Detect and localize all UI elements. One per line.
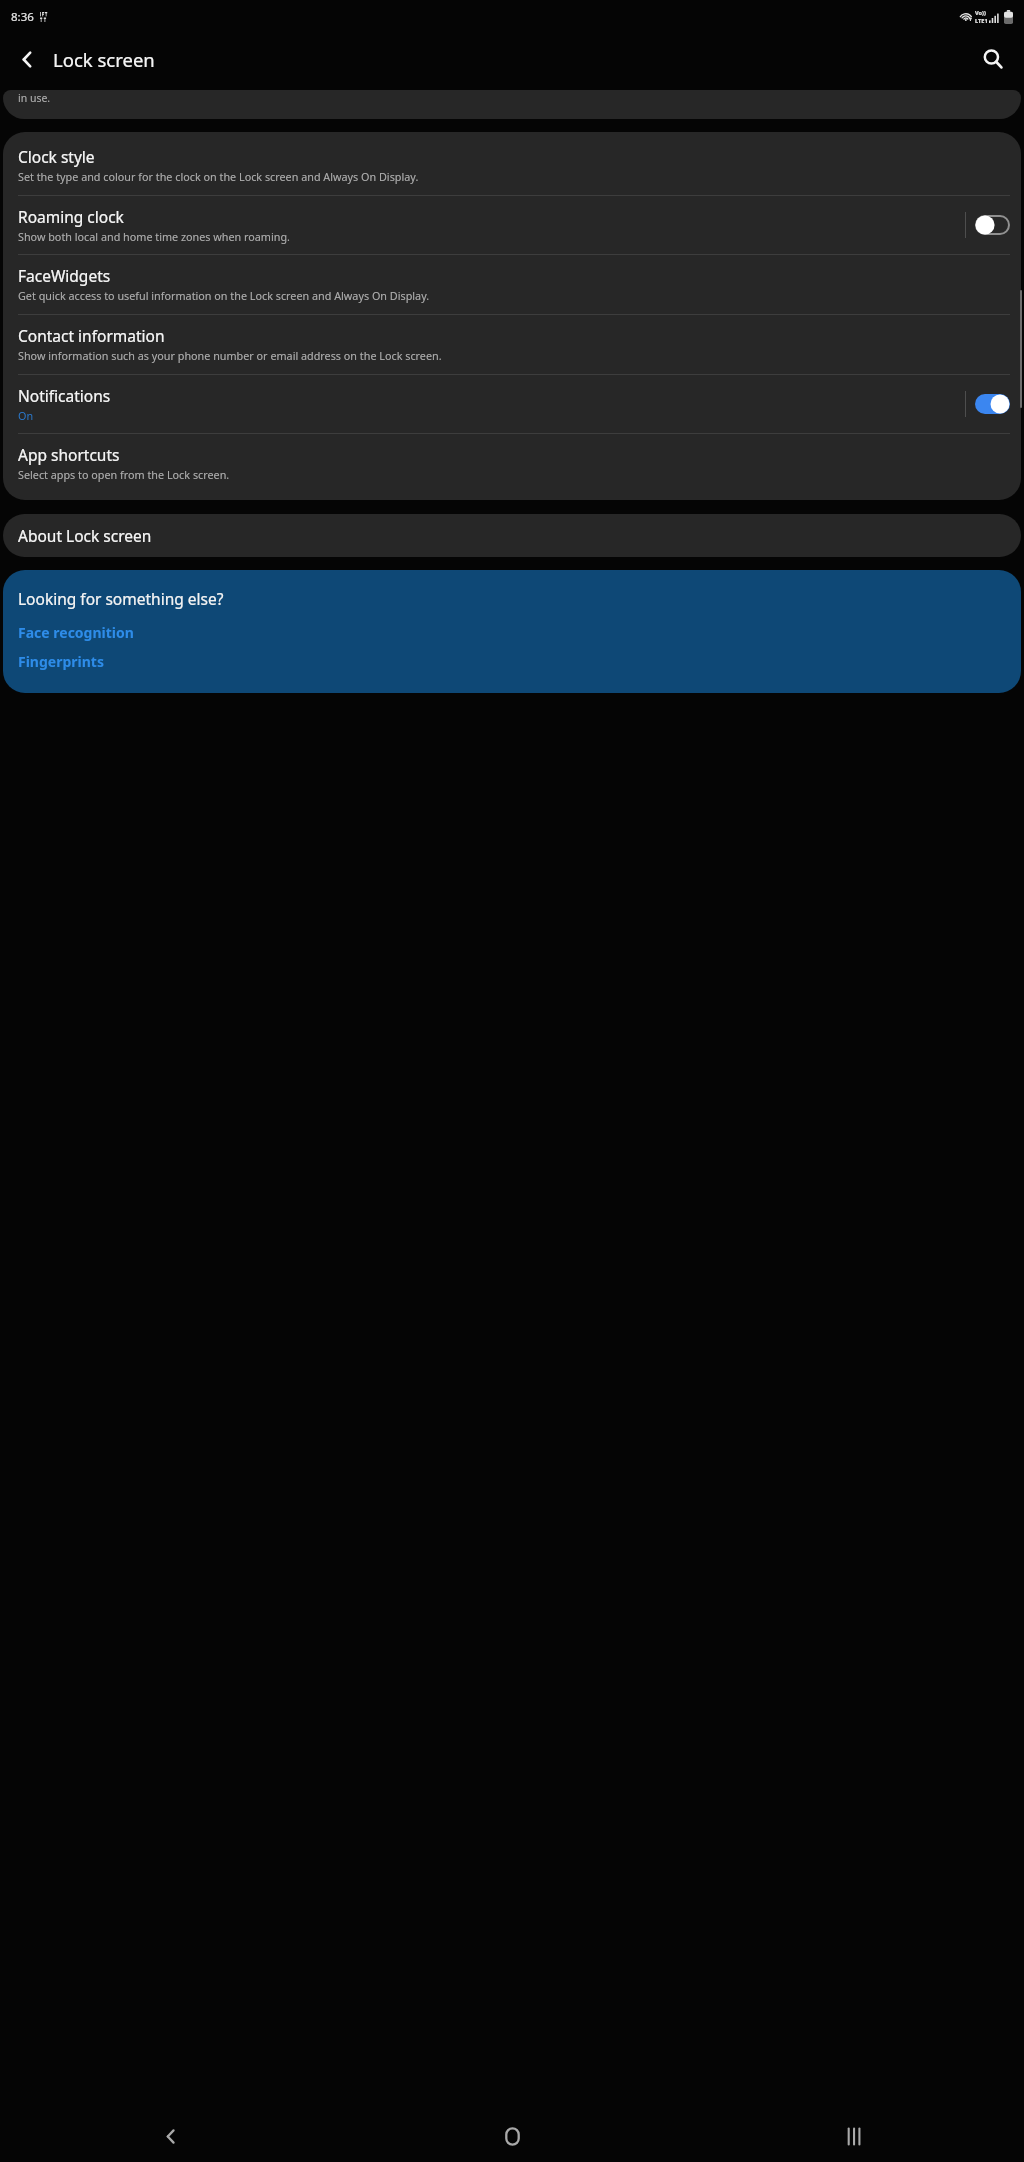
staticText: 8:36 bbox=[11, 9, 34, 25]
button[interactable]: Home bbox=[342, 2110, 683, 2162]
staticText: Face recognition bbox=[18, 623, 134, 642]
staticText: Select apps to open from the Lock screen… bbox=[18, 467, 230, 482]
staticText: Show both local and home time zones when… bbox=[18, 229, 290, 244]
staticText: Fingerprints bbox=[18, 652, 104, 671]
staticText: Show information such as your phone numb… bbox=[18, 348, 442, 363]
staticText: Roaming clock bbox=[18, 206, 124, 227]
button[interactable]: Back bbox=[0, 2110, 342, 2162]
button[interactable]: Contact information bbox=[3, 315, 1021, 374]
button[interactable]: Switch on bbox=[975, 394, 1010, 414]
staticText: Set the type and colour for the clock on… bbox=[18, 169, 419, 184]
staticText: Contact information bbox=[18, 325, 165, 346]
staticText: Get quick access to useful information o… bbox=[18, 288, 430, 303]
staticText: App shortcuts bbox=[18, 444, 120, 465]
button[interactable]: Fingerprints bbox=[18, 650, 104, 673]
button[interactable]: Switch off bbox=[975, 215, 1010, 235]
button[interactable]: FaceWidgets bbox=[3, 255, 1021, 314]
button[interactable]: Clock style bbox=[3, 132, 1021, 195]
staticText: Lock screen bbox=[53, 47, 155, 72]
button[interactable]: About Lock screen bbox=[3, 514, 1021, 557]
staticText: FaceWidgets bbox=[18, 265, 111, 286]
staticText: Notifications bbox=[18, 385, 111, 406]
button[interactable]: Recent apps bbox=[683, 2110, 1024, 2162]
staticText: About Lock screen bbox=[18, 525, 152, 546]
button[interactable]: Face recognition bbox=[18, 621, 134, 644]
button[interactable]: in use. bbox=[3, 90, 1021, 119]
button[interactable]: Notifications bbox=[3, 375, 1021, 433]
staticText: On bbox=[18, 408, 34, 423]
button[interactable]: App shortcuts bbox=[3, 434, 1021, 500]
staticText: Vo)) bbox=[975, 9, 986, 17]
button[interactable]: Roaming clock bbox=[3, 196, 1021, 254]
staticText: Looking for something else? bbox=[18, 588, 224, 609]
staticText: Clock style bbox=[18, 146, 95, 167]
staticText: LTE1 bbox=[975, 17, 988, 25]
staticText: in use. bbox=[18, 91, 51, 105]
button[interactable]: Search bbox=[970, 36, 1016, 82]
button[interactable]: Back bbox=[5, 37, 49, 81]
